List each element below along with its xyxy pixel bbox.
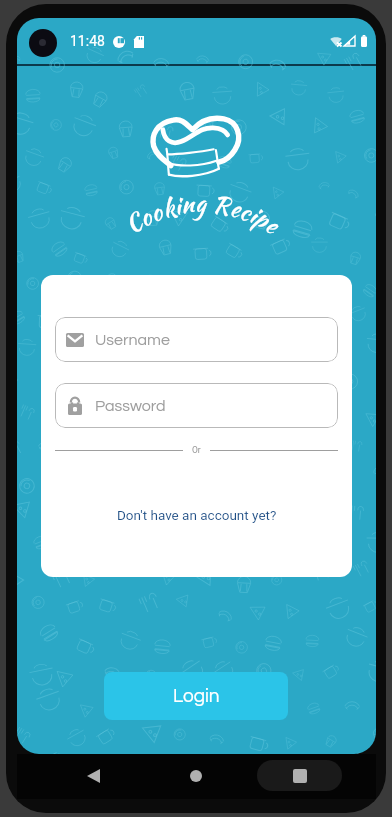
staticText: Login <box>173 686 220 706</box>
staticText: 11:48 <box>70 33 105 49</box>
button[interactable]: Recent apps <box>257 760 342 791</box>
button[interactable]: Don't have an account yet? <box>113 505 281 525</box>
staticText: Don't have an account yet? <box>117 507 277 523</box>
button[interactable]: Password <box>55 383 338 428</box>
staticText: Username <box>95 332 170 348</box>
button[interactable]: Home <box>173 760 219 792</box>
staticText: Password <box>95 398 166 414</box>
button[interactable]: Back <box>70 760 116 792</box>
staticText: Or <box>192 445 201 455</box>
button[interactable]: Username <box>55 317 338 362</box>
button[interactable]: Login <box>104 672 288 720</box>
